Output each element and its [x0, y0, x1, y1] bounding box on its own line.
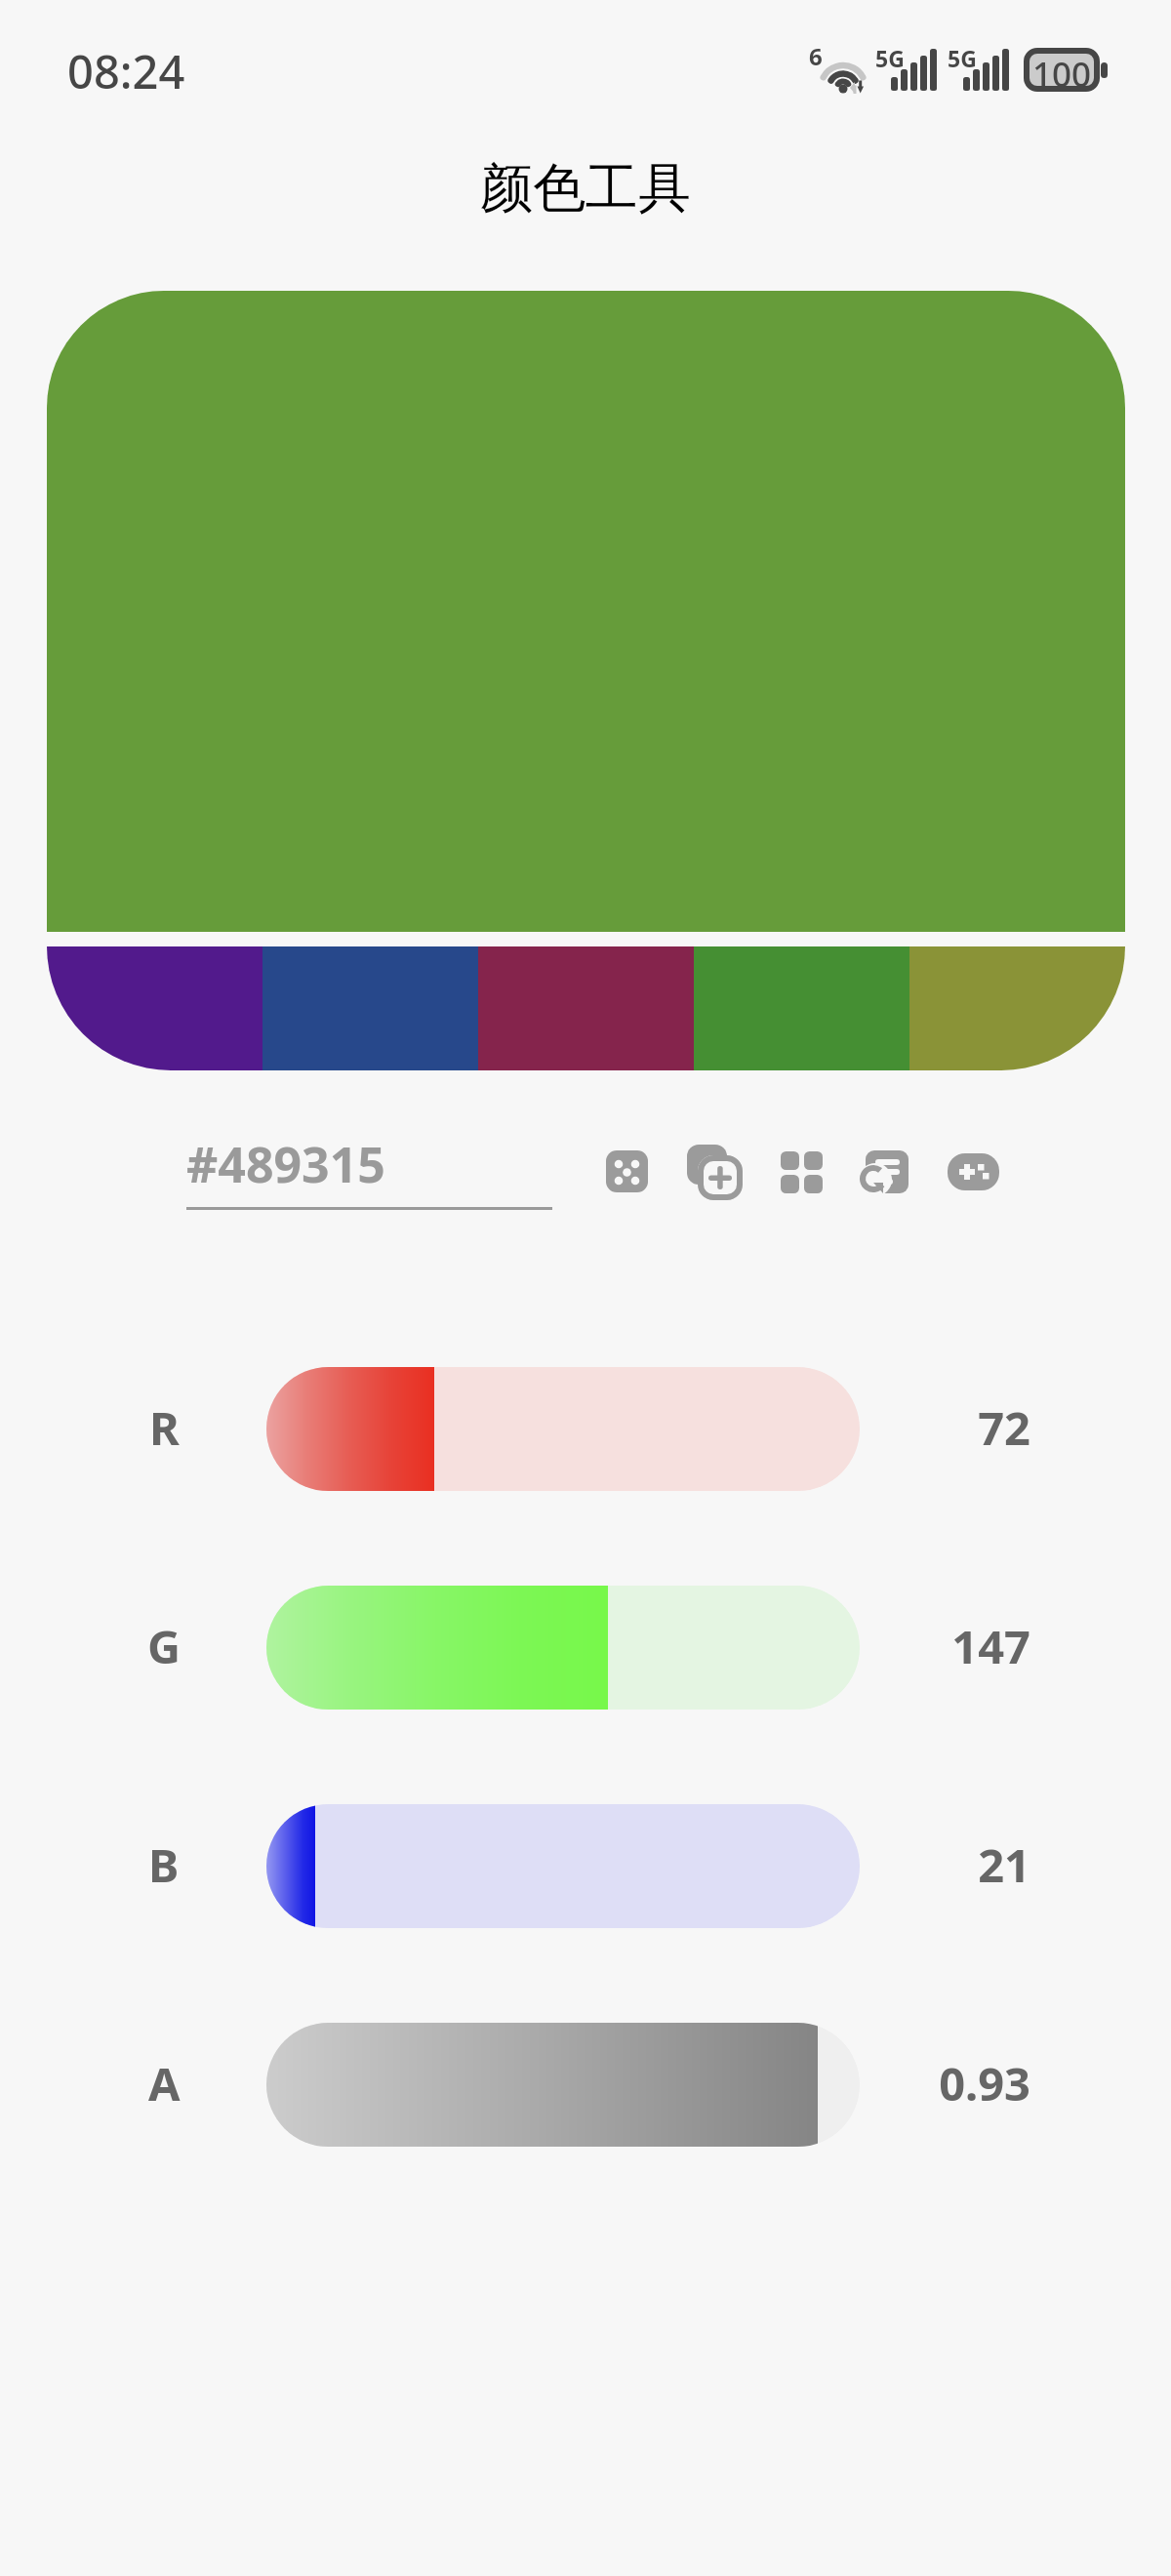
staticText: R [149, 1396, 180, 1459]
staticText: B [148, 1833, 180, 1896]
staticText: 6 [809, 40, 823, 72]
button[interactable] [266, 2023, 860, 2147]
button[interactable] [266, 1586, 860, 1710]
button[interactable]: Contrast [948, 1143, 1000, 1195]
button[interactable] [266, 1804, 860, 1928]
button[interactable] [266, 1367, 860, 1491]
button[interactable]: Convert [861, 1143, 913, 1195]
staticText: G [147, 1615, 182, 1677]
button[interactable] [909, 946, 1125, 1070]
staticText: 147 [951, 1615, 1030, 1677]
staticText: #489315 [186, 1131, 385, 1197]
button[interactable]: Random colour [600, 1143, 653, 1195]
staticText: 21 [978, 1833, 1030, 1896]
staticText: 颜色工具 [480, 155, 691, 221]
button[interactable] [694, 946, 909, 1070]
staticText: 72 [978, 1396, 1030, 1459]
staticText: 100 [1032, 51, 1092, 89]
button[interactable] [478, 946, 694, 1070]
button[interactable] [47, 946, 262, 1070]
staticText: 08:24 [67, 40, 185, 102]
button[interactable]: Add to palette [687, 1143, 740, 1195]
staticText: 5G [875, 43, 905, 73]
staticText: 5G [948, 43, 977, 73]
staticText: 0.93 [939, 2052, 1030, 2114]
button[interactable] [262, 946, 478, 1070]
button[interactable]: Palettes [774, 1143, 827, 1195]
staticText: A [148, 2052, 181, 2114]
button[interactable] [47, 291, 1125, 932]
